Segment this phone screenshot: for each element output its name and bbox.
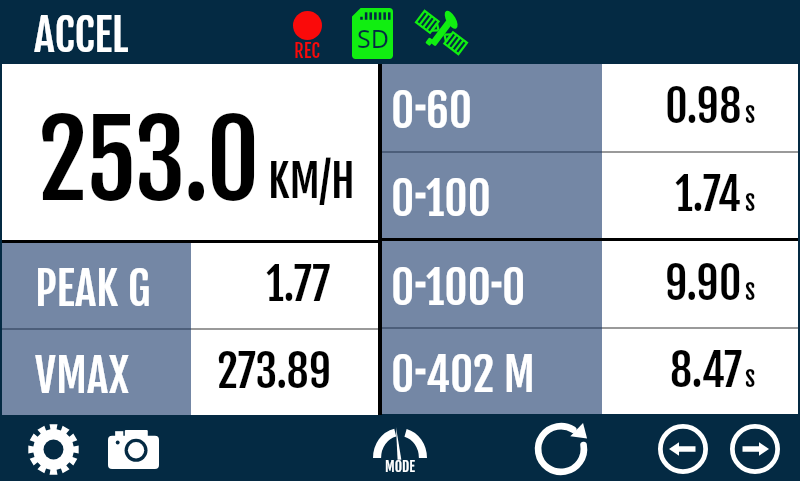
staticText: 0.98 bbox=[665, 79, 742, 134]
staticText: KM/H bbox=[268, 154, 355, 209]
staticText: 1.74 bbox=[675, 167, 742, 222]
staticText: s bbox=[745, 361, 756, 394]
button[interactable]: Settings bbox=[23, 417, 83, 481]
button[interactable]: 253.0 bbox=[2, 64, 378, 240]
staticText: 0 bbox=[502, 260, 526, 317]
staticText: 9.90 bbox=[665, 256, 742, 311]
staticText: ACCEL bbox=[34, 8, 129, 63]
staticText: 0 bbox=[391, 260, 415, 317]
staticText: s bbox=[745, 97, 756, 130]
staticText: PEAK G bbox=[35, 261, 151, 318]
staticText: MODE bbox=[385, 458, 415, 476]
staticText: 273.89 bbox=[217, 344, 332, 399]
button[interactable]: SD card bbox=[352, 8, 393, 59]
staticText: 402 M bbox=[426, 347, 535, 404]
button[interactable]: Camera bbox=[103, 417, 163, 481]
staticText: REC bbox=[294, 39, 320, 63]
staticText: 60 bbox=[426, 83, 473, 140]
button[interactable]: 0 bbox=[382, 153, 798, 238]
button[interactable]: 0 bbox=[382, 64, 798, 151]
staticText: SD bbox=[357, 21, 389, 55]
button[interactable]: VMAX bbox=[2, 330, 378, 415]
button[interactable]: Reset bbox=[531, 417, 591, 481]
staticText: s bbox=[745, 185, 756, 218]
staticText: 0 bbox=[391, 171, 415, 228]
button[interactable]: PEAK G bbox=[2, 243, 378, 328]
button[interactable]: Previous bbox=[653, 417, 713, 481]
button[interactable]: GPS bbox=[415, 6, 468, 59]
staticText: 0 bbox=[391, 83, 415, 140]
button[interactable]: 0 bbox=[382, 329, 798, 414]
staticText: 100 bbox=[426, 171, 491, 228]
staticText: 0 bbox=[391, 347, 415, 404]
button[interactable]: Next bbox=[725, 417, 785, 481]
staticText: 1.77 bbox=[266, 257, 331, 312]
button[interactable]: Record bbox=[285, 6, 329, 60]
staticText: 100 bbox=[426, 260, 491, 317]
staticText: 253.0 bbox=[38, 96, 260, 225]
button[interactable]: 0 bbox=[382, 241, 798, 327]
staticText: s bbox=[745, 274, 756, 307]
staticText: VMAX bbox=[35, 348, 130, 405]
button[interactable]: Mode bbox=[370, 417, 430, 481]
staticText: 8.47 bbox=[670, 343, 742, 398]
